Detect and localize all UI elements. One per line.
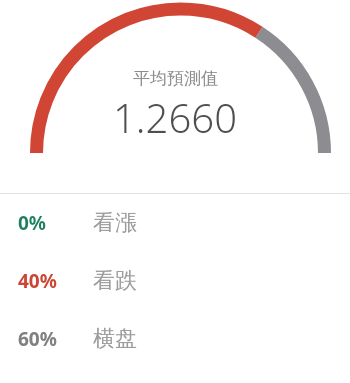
button[interactable]: Average forecast gauge	[0, 0, 350, 193]
staticText: 看跌	[93, 267, 137, 295]
staticText: 平均預測值	[133, 68, 218, 89]
button[interactable]: 60%	[0, 310, 350, 368]
staticText: 0%	[18, 210, 47, 236]
staticText: 横盘	[93, 325, 137, 353]
staticText: 60%	[18, 326, 57, 352]
staticText: 1.2660	[113, 90, 237, 144]
button[interactable]: 0%	[0, 194, 350, 252]
staticText: 看漲	[93, 209, 137, 237]
staticText: 40%	[18, 268, 57, 294]
button[interactable]: 40%	[0, 252, 350, 310]
